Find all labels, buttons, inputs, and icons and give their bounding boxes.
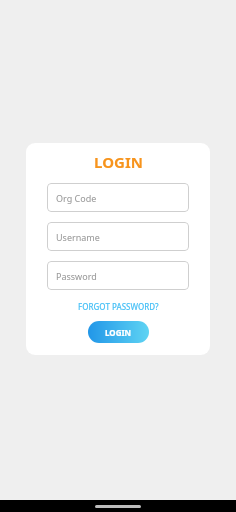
staticText: Password <box>56 270 97 282</box>
staticText: Org Code <box>56 192 97 204</box>
button[interactable]: LOGIN <box>88 321 149 343</box>
button[interactable]: Username <box>47 222 189 251</box>
button[interactable]: FORGOT PASSWORD? <box>72 298 165 315</box>
staticText: LOGIN <box>105 327 132 338</box>
staticText: Username <box>56 231 100 243</box>
button[interactable]: Org Code <box>47 183 189 212</box>
button[interactable]: Password <box>47 261 189 290</box>
staticText: LOGIN <box>94 152 143 172</box>
staticText: FORGOT PASSWORD? <box>78 301 159 312</box>
